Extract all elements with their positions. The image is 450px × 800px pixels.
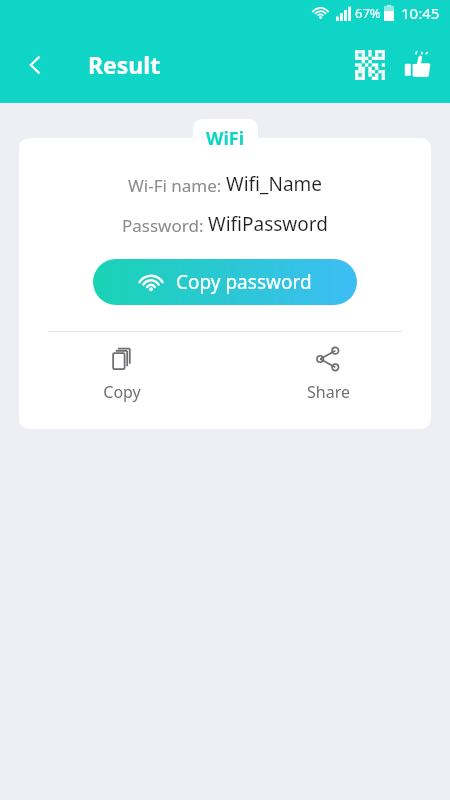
staticText: WiFi — [206, 126, 245, 151]
staticText: Wi-Fi name: — [128, 174, 226, 197]
staticText: WifiPassword — [208, 211, 328, 237]
button[interactable]: Show QR code — [346, 41, 394, 89]
staticText: 67% — [355, 4, 381, 22]
button[interactable]: Share — [225, 332, 431, 417]
staticText: Result — [88, 49, 161, 80]
staticText: Wifi_Name — [226, 171, 323, 197]
staticText: Share — [307, 381, 350, 403]
staticText: Copy password — [176, 269, 312, 295]
button[interactable]: Copy password — [93, 259, 357, 305]
button[interactable]: Back — [14, 43, 58, 87]
staticText: Copy — [103, 381, 141, 403]
staticText: Password: — [122, 214, 208, 237]
button[interactable]: Copy — [19, 332, 225, 417]
staticText: 10:45 — [401, 3, 440, 23]
button[interactable]: Rate app — [394, 41, 442, 89]
